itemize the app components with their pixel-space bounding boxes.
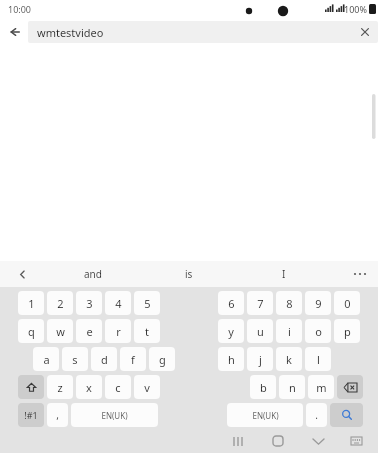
button[interactable]: q — [18, 319, 44, 343]
button[interactable]: w — [47, 319, 73, 343]
staticText: , — [56, 408, 59, 422]
button[interactable]: 3 — [76, 291, 102, 315]
staticText: 3 — [86, 296, 93, 311]
staticText: l — [317, 352, 320, 367]
button[interactable]: x — [76, 375, 102, 399]
staticText: I — [282, 267, 286, 281]
staticText: r — [116, 324, 121, 339]
button[interactable]: Previous suggestions — [0, 261, 44, 287]
staticText: h — [228, 352, 235, 367]
button[interactable]: u — [247, 319, 273, 343]
button[interactable]: and — [51, 261, 135, 287]
staticText: 100% — [344, 3, 367, 15]
button[interactable]: 8 — [276, 291, 302, 315]
staticText: 5 — [144, 296, 151, 311]
button[interactable]: I — [242, 261, 326, 287]
staticText: 2 — [57, 296, 64, 311]
button[interactable]: t — [134, 319, 160, 343]
button[interactable]: Hide keyboard — [298, 429, 338, 453]
button[interactable]: k — [276, 347, 302, 371]
staticText: u — [257, 324, 264, 339]
button[interactable]: 1 — [18, 291, 44, 315]
staticText: 1 — [28, 296, 35, 311]
button[interactable]: . — [306, 403, 327, 427]
staticText: w — [56, 324, 65, 339]
staticText: 9 — [315, 296, 322, 311]
staticText: !#1 — [24, 409, 38, 421]
button[interactable]: 2 — [47, 291, 73, 315]
staticText: EN(UK) — [101, 410, 128, 421]
button[interactable]: f — [120, 347, 146, 371]
staticText: j — [259, 352, 262, 367]
staticText: y — [228, 324, 234, 339]
staticText: m — [316, 380, 327, 395]
button[interactable]: v — [134, 375, 160, 399]
button[interactable]: wmtestvideo — [28, 21, 378, 43]
staticText: i — [288, 324, 291, 339]
button[interactable]: !#1 — [18, 403, 44, 427]
button[interactable]: n — [279, 375, 305, 399]
button[interactable]: is — [147, 261, 231, 287]
button[interactable]: EN(UK) — [227, 403, 303, 427]
button[interactable]: 7 — [247, 291, 273, 315]
button[interactable]: , — [47, 403, 68, 427]
staticText: 8 — [286, 296, 293, 311]
button[interactable]: o — [305, 319, 331, 343]
button[interactable]: 9 — [305, 291, 331, 315]
button[interactable]: m — [308, 375, 334, 399]
button[interactable]: Change keyboard — [338, 429, 374, 453]
staticText: wmtestvideo — [37, 25, 104, 40]
button[interactable]: y — [218, 319, 244, 343]
staticText: EN(UK) — [252, 410, 279, 421]
button[interactable]: 0 — [334, 291, 360, 315]
button[interactable]: i — [276, 319, 302, 343]
staticText: o — [315, 324, 322, 339]
button[interactable]: Shift — [18, 375, 44, 399]
button[interactable]: Backspace — [337, 375, 363, 399]
staticText: g — [159, 352, 166, 367]
button[interactable]: Search — [330, 403, 363, 427]
staticText: 6 — [228, 296, 235, 311]
button[interactable]: 4 — [105, 291, 131, 315]
button[interactable]: Recents — [218, 429, 258, 453]
staticText: e — [86, 324, 93, 339]
button[interactable]: z — [47, 375, 73, 399]
button[interactable]: r — [105, 319, 131, 343]
button[interactable]: b — [250, 375, 276, 399]
staticText: 0 — [344, 296, 351, 311]
button[interactable]: More options — [342, 261, 378, 287]
staticText: a — [43, 352, 50, 367]
staticText: b — [260, 380, 267, 395]
button[interactable]: p — [334, 319, 360, 343]
staticText: 10:00 — [8, 3, 32, 15]
button[interactable]: s — [62, 347, 88, 371]
button[interactable]: c — [105, 375, 131, 399]
staticText: . — [315, 408, 318, 422]
button[interactable]: e — [76, 319, 102, 343]
staticText: k — [286, 352, 292, 367]
staticText: s — [72, 352, 78, 367]
staticText: c — [115, 380, 121, 395]
staticText: and — [84, 267, 102, 281]
button[interactable]: a — [33, 347, 59, 371]
staticText: z — [57, 380, 63, 395]
staticText: v — [144, 380, 150, 395]
button[interactable]: 6 — [218, 291, 244, 315]
button[interactable]: l — [305, 347, 331, 371]
button[interactable]: h — [218, 347, 244, 371]
staticText: p — [344, 324, 351, 339]
staticText: 7 — [257, 296, 264, 311]
button[interactable]: EN(UK) — [71, 403, 158, 427]
button[interactable]: Home — [258, 429, 298, 453]
button[interactable]: j — [247, 347, 273, 371]
button[interactable]: Clear — [352, 21, 378, 43]
button[interactable]: g — [149, 347, 175, 371]
staticText: f — [131, 352, 135, 367]
button[interactable]: Back — [0, 18, 28, 46]
staticText: x — [86, 380, 92, 395]
button[interactable]: 5 — [134, 291, 160, 315]
staticText: is — [185, 267, 193, 281]
staticText: t — [145, 324, 149, 339]
staticText: q — [28, 324, 35, 339]
button[interactable]: d — [91, 347, 117, 371]
